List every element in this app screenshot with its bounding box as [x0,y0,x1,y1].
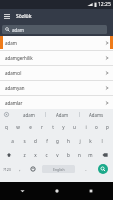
button[interactable]: u [69,120,80,134]
staticText: ?123 [3,167,11,172]
button[interactable]: a [6,134,18,148]
button[interactable]: w [12,120,24,134]
staticText: adamyan [5,85,25,91]
staticText: adam [5,40,17,46]
staticText: q [5,124,8,130]
staticText: c [45,152,48,158]
button[interactable]: v [52,148,63,162]
button[interactable]: adam [0,36,113,50]
button[interactable]: y [58,120,69,134]
staticText: l [101,138,103,144]
button[interactable]: adam [13,109,45,120]
button[interactable]: i [80,120,91,134]
button[interactable]: , [13,162,27,176]
button[interactable]: r [36,120,47,134]
button[interactable]: n [74,148,85,162]
button[interactable]: Adams [80,109,113,120]
button[interactable]: t [47,120,58,134]
button[interactable]: b [63,148,74,162]
button[interactable]: Emoji [27,162,39,176]
staticText: adamgerhilik [5,55,33,61]
staticText: o [95,124,98,130]
staticText: Sözlük [16,13,32,20]
staticText: d [34,138,37,144]
staticText: t [52,124,54,130]
button[interactable]: adam [2,25,107,34]
staticText: adamlar [5,100,23,106]
staticText: w [16,124,20,130]
button[interactable]: Back [11,182,34,200]
staticText: , [19,166,21,173]
button[interactable]: h [63,134,74,148]
button[interactable]: s [18,134,30,148]
staticText: k [89,138,92,144]
staticText: m [88,152,93,158]
staticText: a [11,138,14,144]
button[interactable]: p [102,120,113,134]
staticText: r [41,124,43,130]
staticText: j [79,138,81,144]
staticText: y [62,124,65,130]
staticText: 12:25 [98,1,111,8]
button[interactable]: Open navigation drawer [0,9,14,23]
staticText: i [85,124,87,130]
button[interactable]: ?123 [0,162,13,176]
staticText: z [23,152,26,158]
button[interactable]: c [41,148,52,162]
button[interactable]: l [96,134,107,148]
button[interactable]: d [30,134,41,148]
button[interactable]: Delete [96,148,113,162]
staticText: x [34,152,37,158]
button[interactable]: Adam [46,109,79,120]
staticText: p [106,124,109,130]
staticText: h [67,138,70,144]
staticText: e [29,124,32,130]
staticText: s [23,138,26,144]
staticText: v [56,152,59,158]
button[interactable]: Voice input [0,109,13,120]
button[interactable]: z [18,148,30,162]
staticText: Adam [56,112,69,118]
button[interactable]: adamlar [0,96,113,109]
button[interactable]: Recent apps [79,182,102,200]
button[interactable]: adamyan [0,81,113,95]
button[interactable]: j [74,134,85,148]
button[interactable]: g [52,134,63,148]
button[interactable]: x [30,148,41,162]
staticText: n [78,152,81,158]
button[interactable]: q [0,120,12,134]
button[interactable]: m [85,148,96,162]
staticText: u [73,124,76,130]
button[interactable]: Home [45,182,68,200]
staticText: g [56,138,59,144]
staticText: adam [12,27,25,33]
button[interactable]: Shift [0,148,18,162]
button[interactable]: adamgerhilik [0,51,113,65]
button[interactable]: f [41,134,52,148]
staticText: f [46,138,48,144]
staticText: English [53,167,65,172]
staticText: b [67,152,70,158]
button[interactable]: k [85,134,96,148]
staticText: . [85,166,87,173]
button[interactable]: Space [42,165,75,173]
button[interactable]: adamcıl [0,66,113,80]
staticText: adamcıl [5,70,22,76]
button[interactable]: o [91,120,102,134]
button[interactable]: Search [98,164,108,174]
staticText: adam [23,112,35,118]
staticText: Adams [89,112,104,118]
button[interactable]: e [24,120,36,134]
